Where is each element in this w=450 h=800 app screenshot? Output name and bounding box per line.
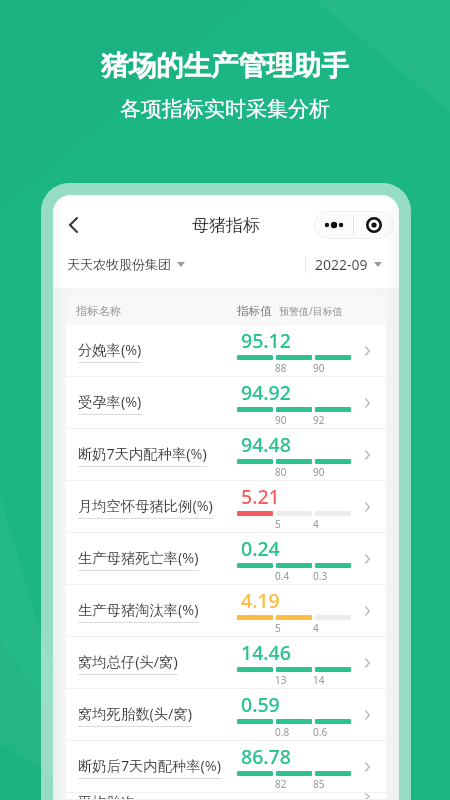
staticText: 天天农牧股份集团	[67, 256, 171, 272]
button[interactable]: 断奶7天内配种率(%)	[66, 429, 386, 481]
button[interactable]: 天天农牧股份集团	[67, 256, 185, 272]
staticText: 4	[313, 517, 319, 531]
staticText: 0.4	[275, 569, 290, 583]
staticText: 断奶后7天内配种率(%)	[78, 756, 222, 776]
staticText: 窝均总仔(头/窝)	[78, 652, 178, 672]
staticText: 94.92	[241, 379, 291, 406]
staticText: 88	[275, 361, 287, 375]
staticText: 3.98	[241, 793, 280, 800]
staticText: 5	[275, 621, 281, 635]
staticText: 各项指标实时采集分析	[120, 96, 330, 122]
button[interactable]: Back	[55, 207, 91, 243]
staticText: 受孕率(%)	[78, 392, 142, 412]
staticText: 断奶7天内配种率(%)	[78, 444, 207, 464]
staticText: 指标值	[237, 304, 272, 319]
button[interactable]: Close mini program	[354, 211, 394, 239]
staticText: 90	[313, 465, 325, 479]
button[interactable]: 2022-09	[315, 255, 382, 274]
staticText: 90	[275, 413, 287, 427]
staticText: 85	[313, 777, 325, 791]
staticText: 5	[275, 517, 281, 531]
staticText: 0.8	[275, 725, 290, 739]
staticText: 4	[313, 621, 319, 635]
staticText: 2022-09	[315, 255, 368, 274]
staticText: 95.12	[241, 327, 291, 354]
staticText: 94.48	[241, 431, 291, 458]
staticText: 猪场的生产管理助手	[101, 49, 349, 84]
button[interactable]: 断奶后7天内配种率(%)	[66, 741, 386, 793]
button[interactable]: 受孕率(%)	[66, 377, 386, 429]
button[interactable]: 窝均死胎数(头/窝)	[66, 689, 386, 741]
button[interactable]: 月均空怀母猪比例(%)	[66, 481, 386, 533]
staticText: 0.59	[241, 691, 280, 718]
staticText: 窝均死胎数(头/窝)	[78, 704, 192, 724]
staticText: 预警值/目标值	[279, 304, 343, 318]
staticText: 4.19	[241, 587, 280, 614]
staticText: 生产母猪淘汰率(%)	[78, 600, 199, 620]
staticText: 80	[275, 465, 287, 479]
staticText: 0.6	[313, 725, 328, 739]
staticText: 90	[313, 361, 325, 375]
staticText: 0.24	[241, 535, 280, 562]
staticText: 平均胎次	[78, 793, 136, 800]
staticText: 指标名称	[76, 304, 122, 318]
button[interactable]: 平均胎次	[66, 793, 386, 800]
staticText: 13	[275, 673, 287, 687]
button[interactable]: 生产母猪死亡率(%)	[66, 533, 386, 585]
staticText: 86.78	[241, 743, 291, 770]
button[interactable]: 窝均总仔(头/窝)	[66, 637, 386, 689]
staticText: 14	[313, 673, 325, 687]
staticText: 母猪指标	[192, 215, 260, 236]
staticText: 5.21	[241, 483, 280, 510]
button[interactable]: More	[314, 211, 353, 239]
staticText: 82	[275, 777, 287, 791]
staticText: 0.3	[313, 569, 328, 583]
staticText: 生产母猪死亡率(%)	[78, 548, 199, 568]
staticText: 14.46	[241, 639, 291, 666]
button[interactable]: 生产母猪淘汰率(%)	[66, 585, 386, 637]
button[interactable]: 分娩率(%)	[66, 325, 386, 377]
staticText: 分娩率(%)	[78, 340, 142, 360]
staticText: 月均空怀母猪比例(%)	[78, 496, 213, 516]
staticText: 92	[313, 413, 325, 427]
